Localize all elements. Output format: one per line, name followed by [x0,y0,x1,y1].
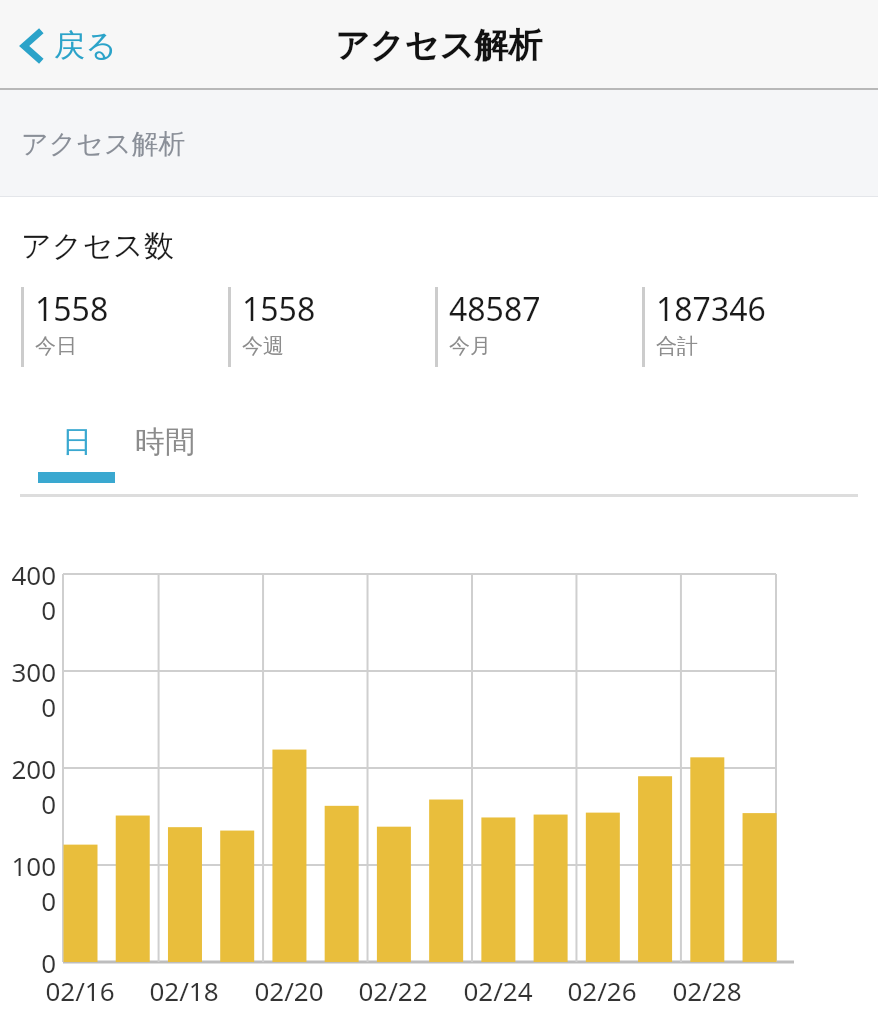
staticText: 4000 [0,557,56,627]
other: Back [20,27,46,65]
staticText: 合計 [656,333,698,359]
staticText: アクセス解析 [335,24,543,67]
staticText: 187346 [656,287,766,331]
staticText: アクセス数 [21,227,174,265]
staticText: 戻る [54,26,117,65]
button[interactable]: 187346 [642,287,842,367]
staticText: 02/24 [463,973,533,1008]
staticText: 日 [62,423,92,461]
button[interactable]: 時間 [125,419,205,497]
button[interactable]: 日 [38,419,115,497]
staticText: アクセス解析 [21,127,186,161]
staticText: 1558 [35,287,109,331]
staticText: 今日 [35,333,77,359]
staticText: 02/18 [149,973,219,1008]
staticText: 02/16 [45,973,115,1008]
staticText: 2000 [0,751,56,821]
staticText: 48587 [449,287,541,331]
staticText: 02/26 [567,973,637,1008]
staticText: 3000 [0,654,56,724]
button[interactable]: Back [14,20,123,71]
staticText: 時間 [135,423,195,461]
staticText: 02/20 [254,973,324,1008]
staticText: 0 [41,945,56,980]
staticText: 02/22 [358,973,428,1008]
button[interactable]: 48587 [435,287,635,367]
staticText: 1000 [0,848,56,918]
button[interactable]: 1558 [228,287,428,367]
staticText: 今月 [449,333,491,359]
staticText: 今週 [242,333,284,359]
staticText: 02/28 [672,973,742,1008]
button[interactable]: 1558 [21,287,221,367]
staticText: 1558 [242,287,316,331]
